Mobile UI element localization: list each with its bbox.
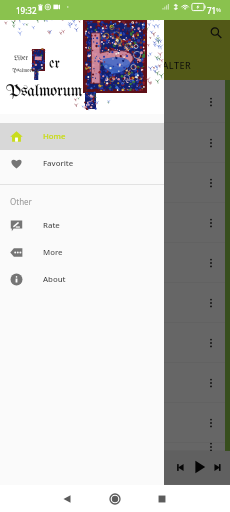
- button[interactable]: More options: [0, 443, 225, 451]
- button[interactable]: About: [0, 266, 164, 293]
- button[interactable]: Favorite: [0, 150, 164, 177]
- button[interactable]: Next: [209, 459, 226, 476]
- button[interactable]: More options: [205, 94, 217, 110]
- button[interactable]: Rate: [0, 212, 164, 239]
- staticText: Psalmorum: [6, 83, 83, 101]
- staticText: 19:32: [16, 5, 37, 16]
- button[interactable]: Previous: [172, 459, 189, 476]
- staticText: Home: [43, 131, 66, 142]
- button[interactable]: Back: [55, 487, 79, 511]
- button[interactable]: More options: [205, 215, 217, 231]
- staticText: PSALTER: [151, 59, 192, 71]
- button[interactable]: More options: [0, 80, 225, 123]
- button[interactable]: More options: [0, 203, 225, 243]
- button[interactable]: More options: [205, 135, 217, 151]
- button[interactable]: More options: [205, 335, 217, 351]
- button[interactable]: More options: [0, 323, 225, 363]
- button[interactable]: More options: [0, 123, 225, 163]
- staticText: Other: [10, 196, 32, 207]
- button[interactable]: Play: [190, 457, 210, 477]
- button[interactable]: More options: [205, 295, 217, 311]
- button[interactable]: More options: [0, 243, 225, 283]
- button[interactable]: More options: [205, 415, 217, 431]
- staticText: Liber: [14, 55, 29, 62]
- button[interactable]: Home: [0, 123, 164, 150]
- button[interactable]: Home: [103, 487, 127, 511]
- button[interactable]: More: [0, 239, 164, 266]
- button[interactable]: More options: [0, 283, 225, 323]
- staticText: %: [216, 6, 221, 14]
- staticText: er: [49, 56, 60, 72]
- button[interactable]: More options: [205, 255, 217, 271]
- staticText: More: [43, 247, 63, 258]
- staticText: Psalmorum: [12, 68, 39, 74]
- button[interactable]: More options: [0, 163, 225, 203]
- button[interactable]: More options: [205, 375, 217, 391]
- staticText: 71: [207, 5, 217, 16]
- button[interactable]: More options: [0, 363, 225, 403]
- button[interactable]: More options: [0, 403, 225, 443]
- button[interactable]: Search: [209, 26, 223, 40]
- button[interactable]: More options: [205, 175, 217, 191]
- button[interactable]: Recents: [150, 487, 174, 511]
- staticText: Favorite: [43, 158, 74, 169]
- staticText: About: [43, 274, 66, 285]
- staticText: Rate: [43, 220, 60, 231]
- button[interactable]: More options: [205, 443, 217, 451]
